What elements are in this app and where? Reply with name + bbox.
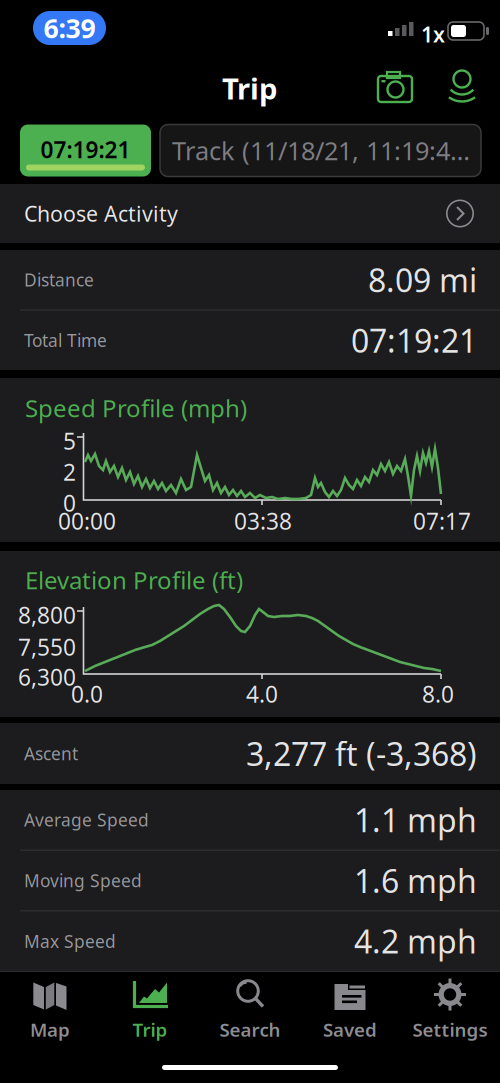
staticText: 03:38: [234, 506, 292, 536]
button[interactable]: Trip: [100, 978, 200, 1042]
staticText: Average Speed: [24, 808, 149, 831]
button[interactable]: 07:19:21: [20, 124, 151, 176]
button[interactable]: Search: [200, 978, 300, 1042]
staticText: 2: [63, 457, 76, 487]
staticText: 4.2 mph: [354, 920, 477, 962]
staticText: Ascent: [24, 742, 78, 765]
button[interactable]: Camera: [373, 67, 417, 111]
staticText: 3,277 ft (-3,368): [246, 732, 477, 775]
staticText: Moving Speed: [24, 869, 142, 892]
staticText: Total Time: [24, 329, 107, 352]
staticText: Elevation Profile (ft): [25, 564, 243, 596]
staticText: 4.0: [246, 679, 278, 709]
staticText: 0.0: [71, 679, 103, 709]
staticText: 5: [63, 426, 76, 456]
staticText: Trip: [132, 1017, 167, 1042]
staticText: 8,800: [18, 600, 76, 630]
staticText: Track (11/18/21, 11:19:45A…: [172, 134, 473, 167]
staticText: 6:39: [43, 10, 95, 46]
staticText: 1.1 mph: [354, 799, 477, 841]
button[interactable]: Track (11/18/21, 11:19:45A…: [160, 124, 481, 176]
staticText: 07:19:21: [351, 319, 477, 361]
button[interactable]: Settings: [400, 978, 500, 1042]
staticText: 6,300: [18, 662, 76, 692]
staticText: 00:00: [58, 506, 116, 536]
button[interactable]: Saved: [300, 978, 400, 1042]
staticText: 07:19:21: [40, 134, 130, 164]
staticText: Trip: [222, 68, 278, 107]
button[interactable]: Choose Activity: [0, 184, 500, 243]
staticText: Speed Profile (mph): [25, 392, 247, 424]
staticText: 0: [63, 488, 76, 518]
staticText: 1x: [421, 20, 445, 48]
staticText: Saved: [323, 1017, 377, 1042]
staticText: Choose Activity: [24, 199, 178, 228]
staticText: Search: [219, 1017, 280, 1042]
staticText: 8.0: [422, 679, 454, 709]
staticText: Max Speed: [24, 930, 116, 953]
staticText: Settings: [412, 1017, 487, 1042]
staticText: 8.09 mi: [368, 258, 477, 301]
button[interactable]: Map: [0, 978, 100, 1042]
staticText: Distance: [24, 268, 94, 291]
staticText: 7,550: [18, 632, 76, 662]
button[interactable]: Record Track: [440, 67, 484, 111]
staticText: 1.6 mph: [354, 859, 477, 902]
staticText: Map: [30, 1017, 70, 1042]
staticText: 07:17: [413, 506, 471, 536]
